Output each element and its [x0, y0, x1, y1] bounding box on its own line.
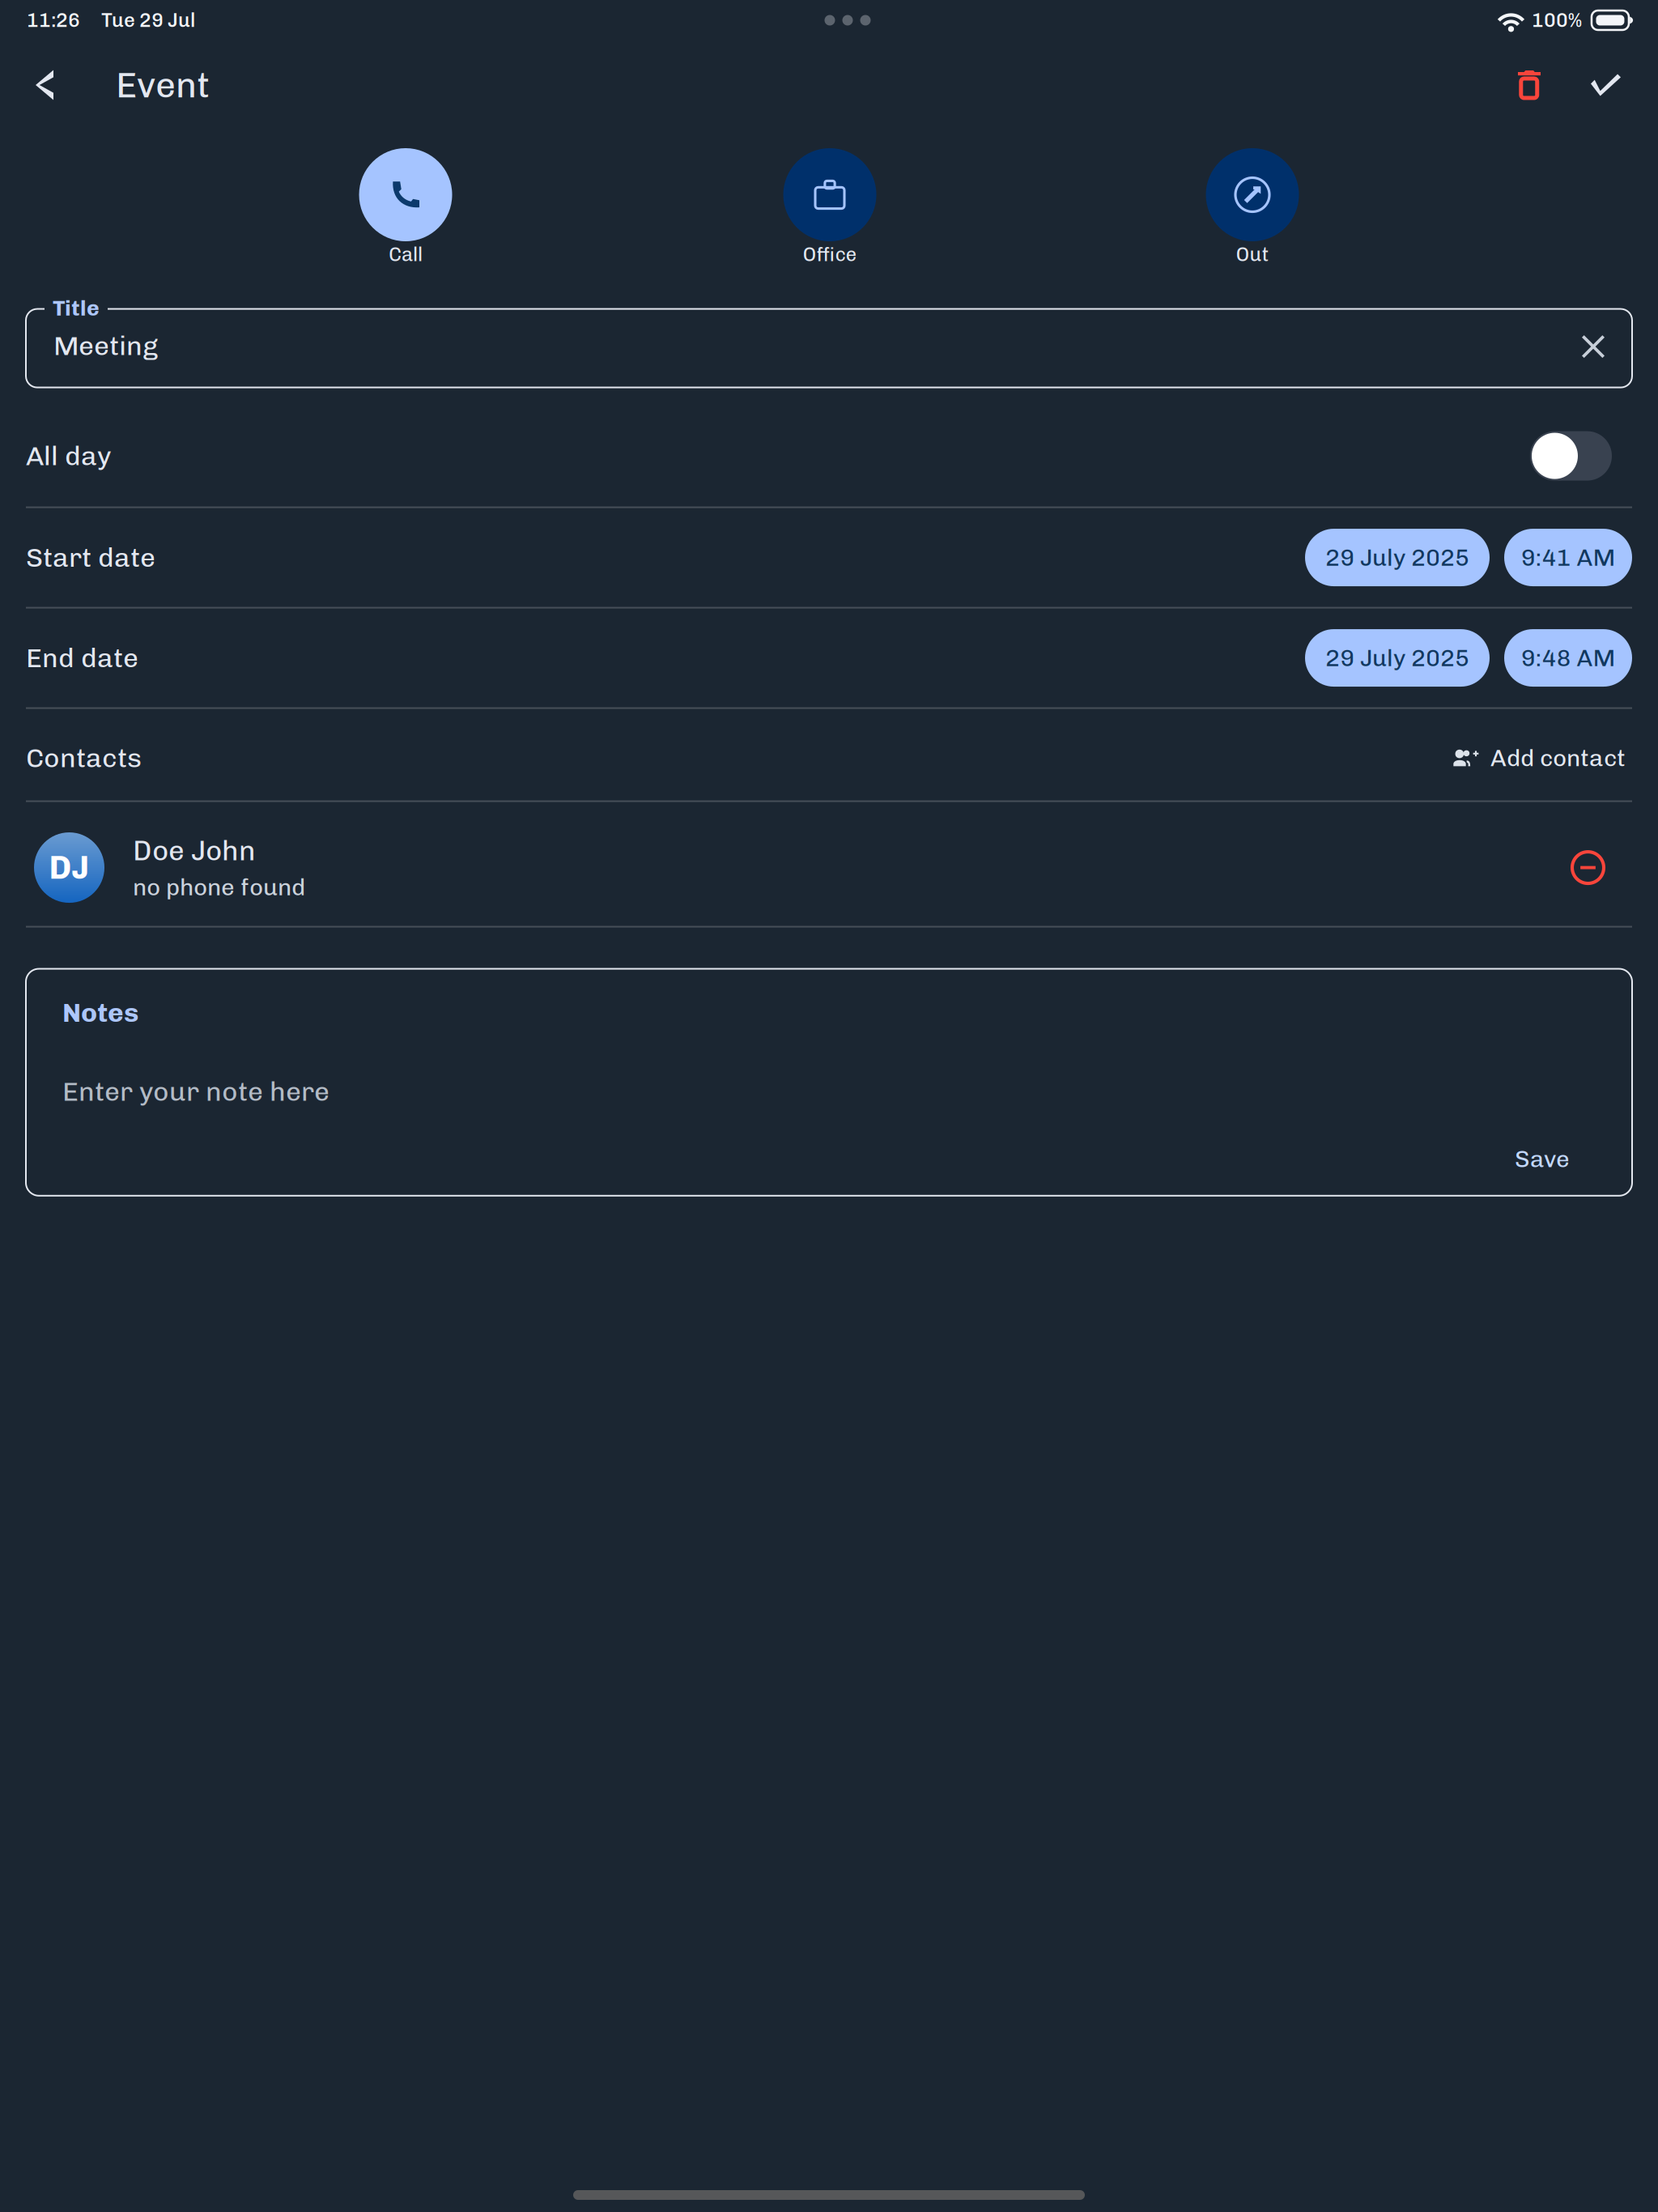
button[interactable]: 9:48 AM	[1504, 629, 1632, 687]
button[interactable]: Save event	[1567, 50, 1658, 120]
staticText: Enter your note here	[62, 1075, 329, 1108]
button[interactable]: 9:41 AM	[1504, 529, 1632, 586]
staticText: 100%	[1532, 9, 1582, 32]
staticText: no phone found	[133, 873, 305, 901]
staticText: 9:48 AM	[1521, 644, 1615, 672]
staticText: 11:26	[27, 9, 80, 32]
button[interactable]: Call	[353, 148, 458, 266]
staticText: Add contact	[1490, 744, 1626, 772]
button[interactable]: Remove contact	[1561, 841, 1615, 895]
staticText: Office	[803, 243, 857, 266]
staticText: Save	[1515, 1145, 1570, 1173]
staticText: Call	[389, 243, 423, 266]
button[interactable]: Add contact	[1453, 744, 1632, 772]
staticText: 29 July 2025	[1325, 644, 1469, 672]
button[interactable]: 29 July 2025	[1305, 529, 1490, 586]
button[interactable]: Delete event	[1494, 49, 1567, 121]
staticText: Doe John	[133, 834, 256, 867]
staticText: Out	[1236, 243, 1269, 266]
button[interactable]: Office	[777, 148, 882, 266]
button[interactable]: Out	[1200, 148, 1305, 266]
staticText: Notes	[62, 996, 138, 1029]
button[interactable]: 29 July 2025	[1305, 629, 1490, 687]
button[interactable]: Back	[0, 49, 76, 121]
staticText: Meeting	[53, 330, 158, 362]
button[interactable]: All day	[1530, 431, 1612, 481]
button[interactable]: Save	[1505, 1138, 1579, 1180]
staticText: Event	[116, 64, 210, 106]
staticText: Tue 29 Jul	[101, 9, 195, 32]
button[interactable]: Clear title	[1569, 322, 1618, 374]
staticText: 9:41 AM	[1521, 543, 1615, 572]
staticText: Contacts	[26, 742, 142, 774]
staticText: End date	[26, 642, 138, 674]
staticText: All day	[26, 440, 112, 472]
staticText: DJ	[49, 848, 89, 887]
staticText: Title	[53, 295, 100, 321]
staticText: Start date	[26, 541, 155, 574]
staticText: 29 July 2025	[1325, 543, 1469, 572]
